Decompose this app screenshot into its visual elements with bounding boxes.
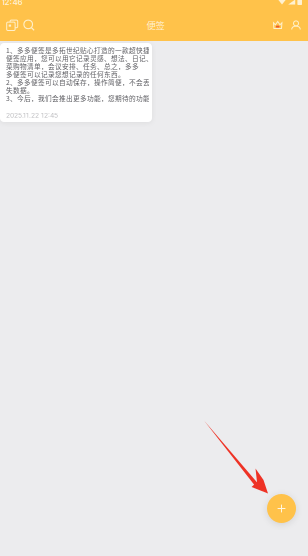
staticText: 多便签可以记录您想记录的任何东西。 [6, 70, 125, 78]
staticText: 失数据。 [6, 86, 34, 94]
staticText: 3、今后，我们会推出更多功能，您期待的功能， [6, 94, 157, 102]
button[interactable]: 1、多多便签是多拓世纪贴心打造的一款超快捷 [0, 43, 152, 122]
staticText: 便签 [146, 18, 164, 32]
staticText: 菜购物清单，会议安排、任务、总之，多多 [6, 62, 139, 70]
button[interactable]: 搜索 [23, 19, 35, 31]
button[interactable]: 我的 [290, 19, 302, 31]
staticText: 12:46 [1, 0, 22, 7]
staticText: 2025.11.22 12:45 [6, 112, 58, 119]
button[interactable]: 新建便签 [267, 494, 296, 523]
button[interactable]: 切换视图 [6, 19, 18, 31]
staticText: 便签应用，您可以用它记录灵感、想法、日记、买 [6, 54, 160, 62]
staticText: 2、多多便签可以自动保存，操作简便，不会丢 [6, 78, 150, 86]
staticText: 1、多多便签是多拓世纪贴心打造的一款超快捷 [6, 46, 150, 54]
button[interactable]: 会员 [272, 19, 284, 31]
